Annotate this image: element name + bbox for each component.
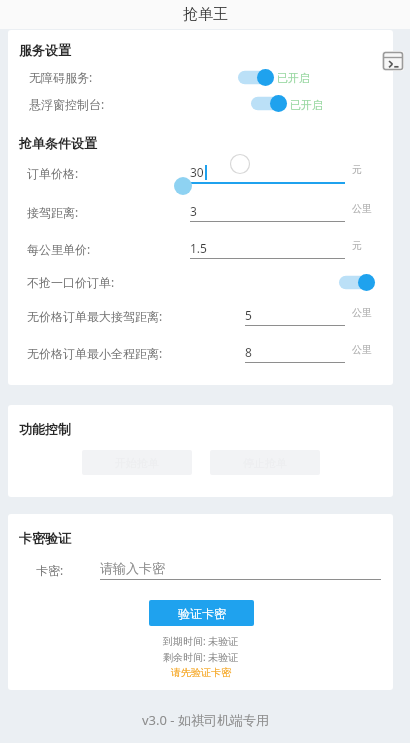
button[interactable]: 不抢一口价订单: <box>8 267 393 297</box>
button[interactable]: 无障碍服务: <box>8 64 393 90</box>
staticText: 功能控制 <box>19 421 71 437</box>
staticText: 悬浮窗控制台: <box>29 96 105 112</box>
staticText: 元 <box>352 239 362 252</box>
button[interactable]: 验证卡密 <box>149 600 254 626</box>
staticText: 无价格订单最小全程距离: <box>27 345 163 361</box>
staticText: 请先验证卡密 <box>171 666 231 679</box>
staticText: 验证卡密 <box>178 606 226 621</box>
button[interactable]: 悬浮窗控制台开关 <box>251 95 287 112</box>
staticText: 8 <box>245 344 252 360</box>
staticText: 每公里单价: <box>27 241 91 257</box>
staticText: 订单价格: <box>27 165 79 181</box>
staticText: 1.5 <box>190 240 207 256</box>
staticText: 30 <box>190 164 204 180</box>
staticText: 3 <box>190 203 197 219</box>
staticText: 元 <box>352 163 362 176</box>
button[interactable]: 每公里单价: <box>8 230 393 267</box>
button[interactable]: 接驾距离: <box>8 193 393 230</box>
button[interactable]: 无价格订单最小全程距离: <box>8 334 393 371</box>
staticText: 已开启 <box>277 71 310 85</box>
button[interactable]: Console <box>382 51 404 71</box>
button[interactable]: 不抢一口价订单开关 <box>339 274 375 291</box>
staticText: 接驾距离: <box>27 204 79 220</box>
staticText: 公里 <box>352 343 372 356</box>
button[interactable]: 无障碍服务开关 <box>238 69 274 86</box>
staticText: 5 <box>245 307 252 323</box>
staticText: 卡密: <box>36 562 64 578</box>
staticText: 公里 <box>352 306 372 319</box>
staticText: v3.0 - 如祺司机端专用 <box>142 711 269 729</box>
staticText: 到期时间: 未验证 <box>163 634 239 648</box>
staticText: 公里 <box>352 202 372 215</box>
staticText: 抢单王 <box>183 5 228 24</box>
button[interactable]: 卡密: <box>8 556 393 584</box>
button[interactable]: 悬浮窗控制台: <box>8 90 393 117</box>
staticText: 已开启 <box>290 98 323 112</box>
staticText: 服务设置 <box>19 42 71 58</box>
staticText: 不抢一口价订单: <box>27 274 115 290</box>
staticText: 剩余时间: 未验证 <box>163 650 239 664</box>
staticText: 无价格订单最大接驾距离: <box>27 308 163 324</box>
button[interactable]: 订单价格: <box>8 153 393 193</box>
staticText: 卡密验证 <box>19 530 71 546</box>
staticText: 无障碍服务: <box>29 69 93 85</box>
staticText: 抢单条件设置 <box>19 135 97 151</box>
staticText: 请输入卡密 <box>100 560 165 576</box>
button[interactable]: 无价格订单最大接驾距离: <box>8 297 393 334</box>
